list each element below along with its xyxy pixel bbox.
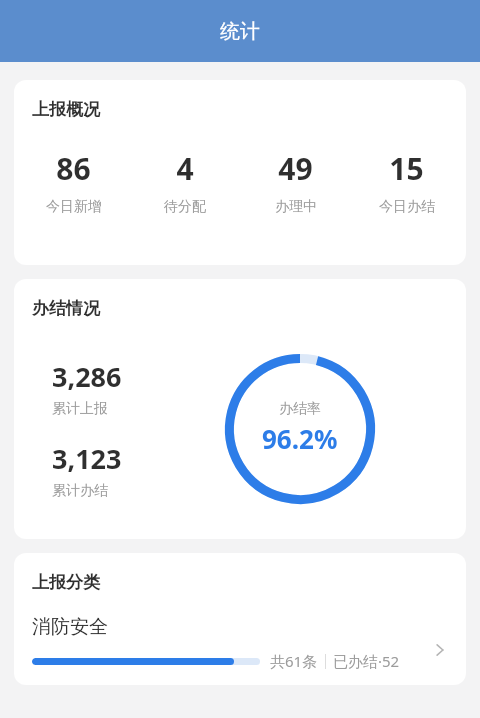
staticText: 3,123 bbox=[52, 440, 122, 477]
other: 查看详情 bbox=[428, 638, 452, 662]
staticText: 4 bbox=[176, 148, 194, 189]
staticText: 共61条 bbox=[270, 651, 318, 671]
staticText: 已办结·52 bbox=[333, 651, 400, 671]
staticText: 办结情况 bbox=[32, 298, 100, 319]
button[interactable]: 15 bbox=[351, 148, 462, 216]
staticText: 待分配 bbox=[164, 198, 206, 216]
staticText: 3,286 bbox=[52, 358, 122, 395]
button[interactable]: 消防安全 bbox=[14, 615, 466, 685]
staticText: 86 bbox=[56, 148, 91, 189]
staticText: 今日办结 bbox=[379, 198, 435, 216]
staticText: 49 bbox=[278, 148, 313, 189]
staticText: 上报分类 bbox=[32, 572, 100, 593]
staticText: 累计上报 bbox=[52, 400, 108, 418]
staticText: 上报概况 bbox=[32, 99, 100, 120]
staticText: 今日新增 bbox=[46, 198, 102, 216]
staticText: 96.2% bbox=[262, 421, 338, 456]
staticText: 办理中 bbox=[275, 198, 317, 216]
staticText: 消防安全 bbox=[32, 615, 108, 639]
staticText: 办结率 bbox=[279, 400, 321, 418]
staticText: 统计 bbox=[220, 19, 260, 44]
button[interactable]: 86 bbox=[18, 148, 129, 216]
button[interactable]: 49 bbox=[240, 148, 351, 216]
staticText: 15 bbox=[389, 148, 424, 189]
staticText: 累计办结 bbox=[52, 482, 108, 500]
button[interactable]: 4 bbox=[129, 148, 240, 216]
